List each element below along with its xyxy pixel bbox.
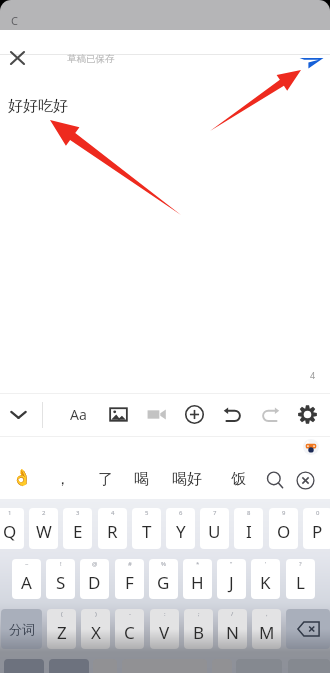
button[interactable]: Close — [3, 44, 33, 74]
button[interactable]: 饭 — [231, 470, 246, 489]
staticText: * — [196, 560, 200, 568]
button[interactable]: @ — [80, 559, 109, 599]
staticText: 3 — [76, 509, 80, 517]
button[interactable]: Insert image — [104, 400, 132, 428]
button[interactable]: Word split — [1, 609, 42, 649]
staticText: , — [266, 610, 268, 618]
staticText: 分词 — [9, 621, 35, 637]
staticText: D — [88, 571, 101, 594]
staticText: @ — [92, 560, 98, 568]
staticText: 4 — [310, 369, 316, 381]
button[interactable]: % — [149, 559, 178, 599]
button[interactable]: Aa — [65, 401, 91, 427]
staticText: K — [260, 571, 271, 594]
staticText: 草稿已保存 — [67, 53, 115, 65]
staticText: 饭 — [231, 470, 246, 489]
button[interactable]: Backspace — [286, 609, 330, 649]
staticText: 9 — [282, 509, 286, 517]
staticText: O — [277, 520, 291, 543]
button[interactable]: 喝 — [134, 470, 149, 489]
staticText: N — [226, 621, 239, 644]
staticText: ! — [60, 560, 62, 568]
button[interactable]: , — [252, 609, 281, 649]
button[interactable]: 3 — [63, 508, 92, 549]
staticText: 5 — [145, 509, 149, 517]
button[interactable]: Send — [298, 52, 324, 72]
staticText: 了 — [98, 470, 113, 489]
button[interactable]: Input method — [303, 439, 319, 455]
staticText: E — [73, 520, 83, 543]
button[interactable]: ~ — [12, 559, 41, 599]
staticText: U — [208, 520, 221, 543]
staticText: ( — [61, 610, 63, 618]
staticText: 7 — [213, 509, 217, 517]
button[interactable]: Search — [265, 470, 286, 491]
staticText: C — [124, 621, 135, 644]
button[interactable]: ， — [55, 470, 70, 489]
button[interactable]: 喝好 — [172, 470, 202, 489]
button[interactable]: 9 — [269, 508, 298, 549]
button[interactable]: ( — [47, 609, 76, 649]
staticText: / — [231, 610, 234, 618]
button[interactable]: ; — [184, 609, 213, 649]
staticText: M — [259, 621, 275, 644]
staticText: 喝好 — [172, 470, 202, 489]
button[interactable]: Redo — [256, 400, 284, 428]
staticText: 1 — [8, 509, 12, 517]
staticText: G — [157, 571, 170, 594]
button[interactable]: Clear input — [295, 470, 316, 491]
button[interactable]: / — [218, 609, 247, 649]
staticText: A — [21, 571, 32, 594]
button[interactable]: # — [115, 559, 144, 599]
button[interactable]: * — [183, 559, 212, 599]
staticText: P — [312, 520, 323, 543]
button[interactable]: Settings — [293, 400, 321, 428]
button[interactable]: ? — [286, 559, 315, 599]
staticText: B — [193, 621, 205, 644]
staticText: " — [230, 560, 233, 568]
button[interactable]: 2 — [29, 508, 58, 549]
staticText: J — [229, 571, 234, 594]
staticText: S — [56, 571, 66, 594]
staticText: T — [142, 520, 152, 543]
button[interactable]: Insert video — [142, 400, 170, 428]
staticText: Y — [176, 520, 186, 543]
staticText: ) — [95, 610, 97, 618]
staticText: F — [125, 571, 134, 594]
button[interactable]: - — [115, 609, 144, 649]
button[interactable]: 4 — [98, 508, 127, 549]
staticText: H — [191, 571, 204, 594]
button[interactable]: 0 — [303, 508, 330, 549]
staticText: ; — [198, 610, 200, 618]
staticText: # — [128, 560, 132, 568]
button[interactable]: 7 — [200, 508, 229, 549]
button[interactable]: 了 — [98, 470, 113, 489]
button[interactable]: Add — [180, 400, 208, 428]
staticText: 2 — [42, 509, 46, 517]
button[interactable]: Undo — [218, 400, 246, 428]
button[interactable]: " — [217, 559, 246, 599]
button[interactable]: : — [150, 609, 179, 649]
staticText: R — [107, 520, 118, 543]
button[interactable]: Hide keyboard — [4, 400, 32, 428]
staticText: W — [36, 520, 52, 543]
button[interactable]: ' — [251, 559, 280, 599]
button[interactable]: ) — [81, 609, 110, 649]
button[interactable]: 6 — [166, 508, 195, 549]
staticText: V — [159, 621, 170, 644]
staticText: Q — [3, 520, 17, 543]
button[interactable]: 8 — [234, 508, 263, 549]
button[interactable]: 5 — [132, 508, 161, 549]
button[interactable]: 1 — [0, 508, 24, 549]
button[interactable]: ! — [46, 559, 75, 599]
staticText: ~ — [25, 560, 29, 568]
button[interactable]: 👌 — [12, 468, 32, 487]
staticText: Aa — [70, 405, 87, 424]
